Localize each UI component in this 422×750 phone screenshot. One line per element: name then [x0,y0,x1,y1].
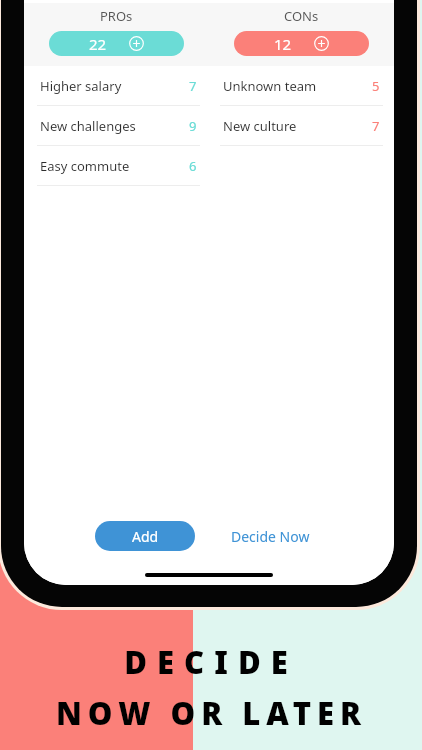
button[interactable]: Unknown team [220,66,383,106]
staticText: 9 [189,117,197,135]
staticText: Decide Now [231,527,310,546]
staticText: 22 [89,34,107,54]
button[interactable]: Add CONs [234,31,369,56]
staticText: Unknown team [223,77,372,95]
staticText: 7 [189,77,197,95]
staticText: New challenges [40,117,189,135]
staticText: 6 [189,157,197,175]
staticText: Add [132,527,159,546]
staticText: CONs [284,7,319,25]
staticText: 12 [274,34,292,54]
staticText: DECIDE [124,641,298,683]
button[interactable]: Add PROs [49,31,184,56]
staticText: Higher salary [40,77,189,95]
button[interactable]: New culture [220,106,383,146]
staticText: 5 [372,77,380,95]
staticText: New culture [223,117,372,135]
button[interactable]: Higher salary [37,66,200,106]
staticText: Easy commute [40,157,189,175]
staticText: 7 [372,117,380,135]
staticText: PROs [100,7,133,25]
button[interactable]: Decide Now [216,521,324,551]
button[interactable]: New challenges [37,106,200,146]
button[interactable]: Easy commute [37,146,200,186]
button[interactable]: Add [95,521,195,551]
staticText: NOW OR LATER [56,692,367,734]
